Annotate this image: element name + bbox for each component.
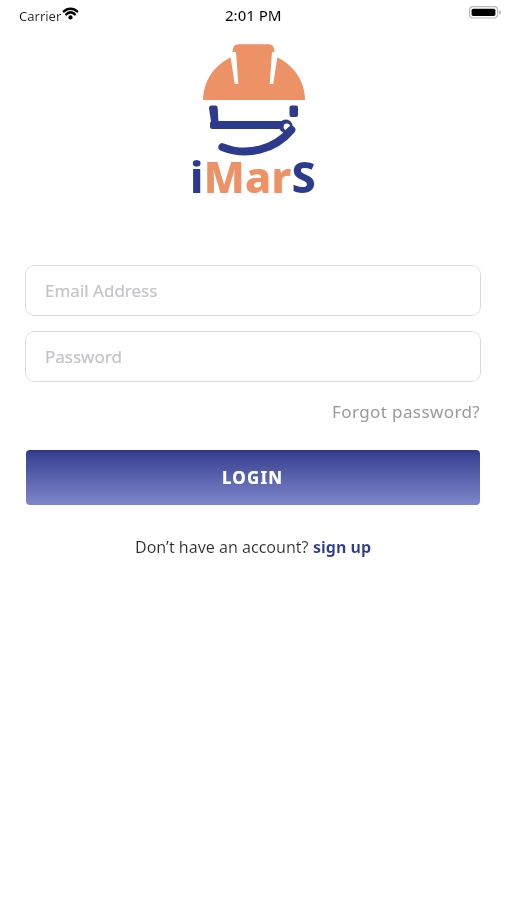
button[interactable]: sign up [313,536,372,558]
staticText: 2:01 PM [225,5,282,25]
staticText: Password [45,345,122,368]
staticText: Forgot password? [332,400,481,423]
button[interactable]: Forgot password? [332,400,481,423]
button[interactable]: Email Address [25,265,481,316]
staticText: Carrier [19,7,62,25]
button[interactable]: Password [25,331,481,382]
staticText: iMarS [190,147,316,206]
staticText: LOGIN [222,466,284,489]
staticText: sign up [313,536,372,558]
button[interactable]: LOGIN [26,450,480,505]
staticText: Don’t have an account? [135,536,313,558]
staticText: Email Address [45,279,158,302]
